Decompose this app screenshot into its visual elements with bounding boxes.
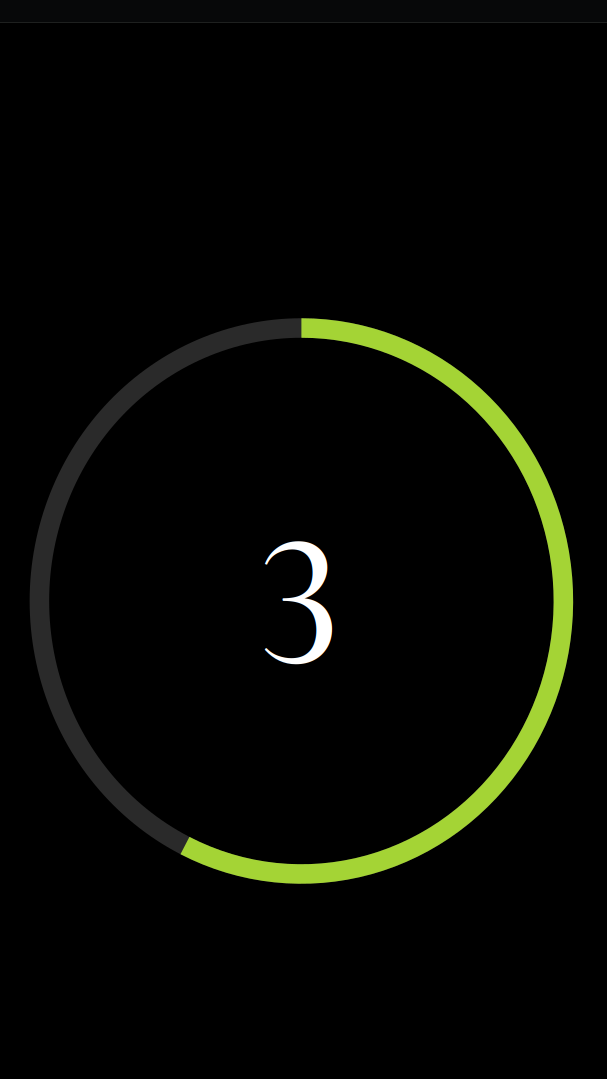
staticText: 3	[258, 487, 340, 717]
button[interactable]: Skip countdown, 3 seconds remaining	[0, 0, 607, 1079]
